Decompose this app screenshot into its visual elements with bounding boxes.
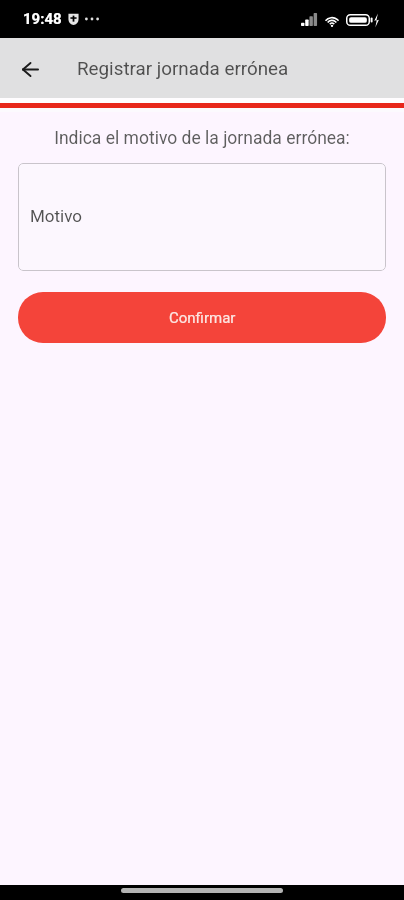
button[interactable]: Motivo [18, 163, 386, 271]
staticText: 19:48 [23, 10, 62, 28]
staticText: Registrar jornada errónea [77, 58, 289, 80]
staticText: Confirmar [169, 309, 236, 327]
staticText: Indica el motivo de la jornada errónea: [0, 128, 404, 149]
button[interactable]: Back [8, 46, 52, 90]
staticText: Motivo [30, 206, 83, 226]
button[interactable]: Confirmar [18, 292, 386, 343]
